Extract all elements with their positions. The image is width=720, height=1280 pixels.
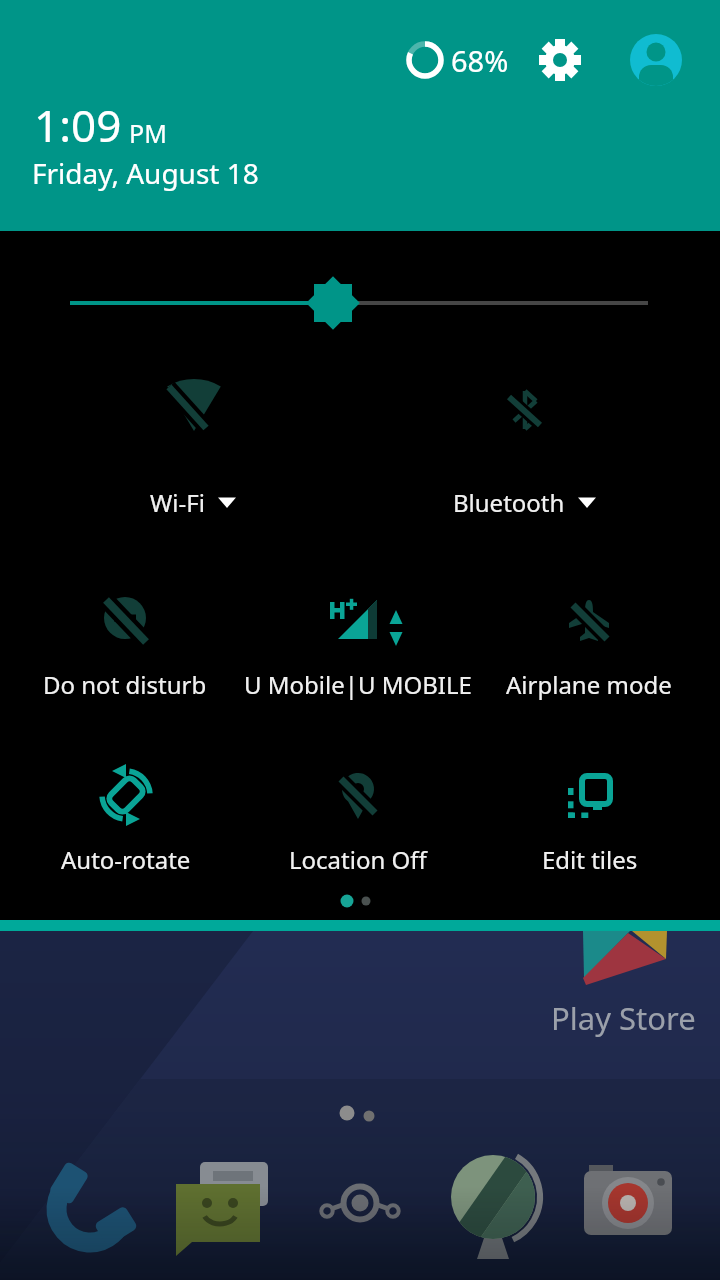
- button[interactable]: Bluetooth: [394, 370, 654, 524]
- button[interactable]: [537, 37, 583, 83]
- button[interactable]: Airplane mode: [459, 580, 719, 706]
- staticText: U Mobile|U MOBILE: [244, 668, 472, 701]
- button[interactable]: [560, 931, 690, 1041]
- button[interactable]: Do not disturb: [0, 578, 255, 706]
- button[interactable]: [630, 34, 682, 86]
- staticText: 68%: [451, 41, 509, 80]
- button[interactable]: Auto-rotate: [0, 755, 256, 881]
- button[interactable]: [578, 1153, 678, 1253]
- staticText: Location Off: [289, 843, 427, 876]
- button[interactable]: Location Off: [228, 755, 488, 881]
- staticText: Edit tiles: [542, 843, 638, 876]
- button[interactable]: [40, 1153, 140, 1253]
- staticText: PM: [129, 116, 167, 150]
- staticText: Friday, August 18: [32, 154, 259, 192]
- staticText: Auto-rotate: [61, 843, 191, 876]
- button[interactable]: [310, 1153, 410, 1253]
- button[interactable]: [443, 1153, 543, 1253]
- staticText: 1:09: [34, 95, 122, 155]
- button[interactable]: [50, 273, 670, 333]
- button[interactable]: [168, 1153, 268, 1253]
- staticText: Airplane mode: [506, 668, 672, 701]
- button[interactable]: Wi-Fi: [63, 368, 323, 524]
- button[interactable]: U Mobile|U MOBILE: [228, 580, 488, 706]
- staticText: Play Store: [551, 997, 696, 1039]
- button[interactable]: Edit tiles: [460, 754, 720, 881]
- staticText: Wi-Fi: [150, 486, 205, 519]
- staticText: Bluetooth: [453, 486, 565, 519]
- staticText: Do not disturb: [43, 668, 207, 701]
